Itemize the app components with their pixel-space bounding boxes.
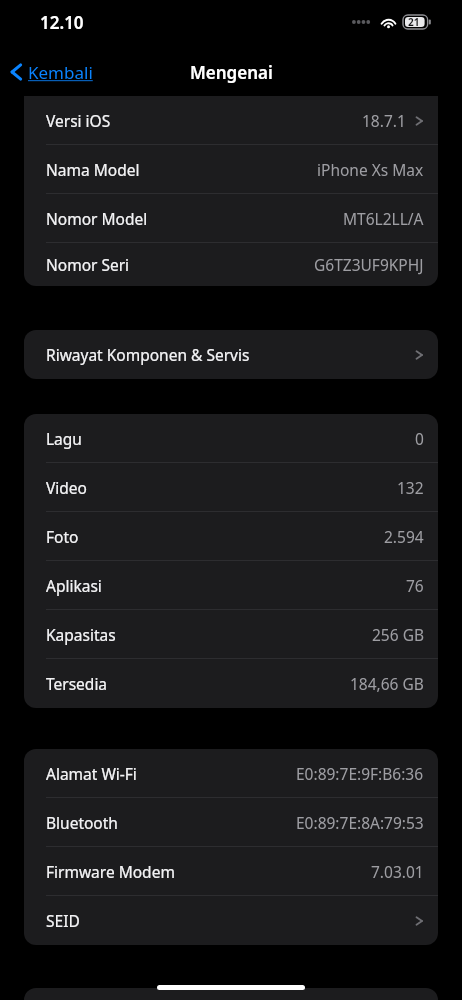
staticText: Nomor Model	[46, 208, 148, 229]
staticText: 256 GB	[372, 624, 424, 645]
staticText: 12.10	[40, 11, 84, 34]
staticText: Alamat Wi-Fi	[46, 763, 137, 784]
button[interactable]: Bluetooth	[24, 798, 438, 847]
staticText: 7.03.01	[371, 861, 424, 882]
staticText: iPhone Xs Max	[317, 159, 424, 180]
button[interactable]: Tersedia	[24, 659, 438, 708]
button[interactable]	[24, 988, 438, 1000]
staticText: Foto	[46, 526, 79, 547]
staticText: Kapasitas	[46, 624, 116, 645]
staticText: G6TZ3UF9KPHJ	[314, 254, 424, 275]
staticText: Aplikasi	[46, 575, 102, 596]
staticText: Video	[46, 477, 87, 498]
staticText: E0:89:7E:8A:79:53	[296, 812, 424, 833]
staticText: 132	[397, 477, 424, 498]
staticText: SEID	[46, 910, 80, 931]
staticText: Nomor Seri	[46, 254, 130, 275]
button[interactable]: Kapasitas	[24, 610, 438, 659]
staticText: 21	[408, 15, 420, 29]
staticText: E0:89:7E:9F:B6:36	[296, 763, 424, 784]
button[interactable]: Nomor Model	[24, 194, 438, 243]
staticText: Kembali	[28, 61, 93, 84]
staticText: Lagu	[46, 428, 82, 449]
staticText: 2.594	[384, 526, 424, 547]
staticText: Firmware Modem	[46, 861, 175, 882]
staticText: Nama Model	[46, 159, 140, 180]
button[interactable]: Nama Model	[24, 145, 438, 194]
staticText: Riwayat Komponen & Servis	[46, 344, 250, 365]
button[interactable]: Versi iOS	[24, 96, 438, 145]
staticText: 0	[415, 428, 424, 449]
staticText: 18.7.1	[362, 110, 406, 131]
button[interactable]: Aplikasi	[24, 561, 438, 610]
button[interactable]: Foto	[24, 512, 438, 561]
staticText: Tersedia	[46, 673, 108, 694]
staticText: Mengenai	[190, 61, 273, 84]
button[interactable]: Nomor Seri	[24, 243, 438, 286]
button[interactable]: Video	[24, 463, 438, 512]
staticText: Versi iOS	[46, 110, 111, 131]
staticText: Bluetooth	[46, 812, 118, 833]
staticText: 184,66 GB	[350, 673, 424, 694]
button[interactable]: Lagu	[24, 414, 438, 463]
button[interactable]: Kembali	[10, 50, 93, 94]
button[interactable]: Firmware Modem	[24, 847, 438, 896]
staticText: 76	[406, 575, 424, 596]
button[interactable]: Alamat Wi-Fi	[24, 749, 438, 798]
button[interactable]: Riwayat Komponen & Servis	[24, 330, 438, 379]
staticText: MT6L2LL/A	[343, 208, 424, 229]
button[interactable]: SEID	[24, 896, 438, 945]
